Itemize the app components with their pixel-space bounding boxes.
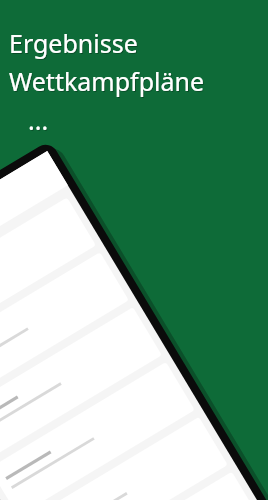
staticText: Ergebnisse	[9, 26, 138, 60]
staticText: Wettkampfpläne	[9, 64, 205, 98]
staticText: ...	[29, 104, 50, 138]
staticText: Wettkampfpläne	[10, 65, 206, 99]
staticText: Ergebnisse	[10, 27, 139, 61]
staticText: ...	[28, 103, 49, 137]
